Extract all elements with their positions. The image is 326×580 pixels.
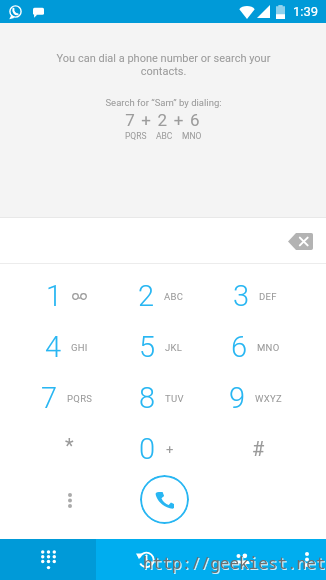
staticText: JKL	[165, 342, 183, 353]
button[interactable]: More options	[293, 539, 321, 580]
button[interactable]: 9	[208, 372, 302, 423]
button[interactable]: 7	[19, 372, 114, 423]
button[interactable]: 1	[19, 270, 114, 321]
staticText: GHI	[71, 342, 88, 353]
button[interactable]: #	[208, 423, 302, 474]
staticText: #	[252, 437, 265, 460]
staticText: *	[65, 434, 74, 457]
button[interactable]: 8	[114, 372, 208, 423]
staticText: +	[166, 442, 174, 457]
staticText: http://geekiest.net	[143, 552, 326, 574]
staticText: 1	[46, 279, 63, 313]
staticText: Search for “Sam” by dialing:	[105, 97, 222, 108]
button[interactable]: Call	[140, 475, 189, 524]
button[interactable]: 2	[114, 270, 208, 321]
staticText: 6	[231, 330, 248, 364]
button[interactable]: 5	[114, 321, 208, 372]
staticText: 3	[233, 279, 250, 313]
staticText: TUV	[165, 393, 184, 404]
staticText: DEF	[259, 291, 277, 302]
staticText: 1:39	[293, 4, 319, 19]
staticText: 7 + 2 + 6	[125, 110, 201, 130]
staticText: PQRS	[67, 393, 93, 404]
staticText: 9	[229, 381, 246, 415]
button[interactable]: Dialpad	[0, 539, 96, 580]
staticText: ABC	[156, 131, 173, 141]
staticText: ABC	[164, 291, 184, 302]
button[interactable]: 6	[208, 321, 302, 372]
staticText: PQRS	[125, 131, 147, 141]
button[interactable]: More options	[50, 480, 90, 520]
staticText: http://geekiest.net	[144, 553, 326, 575]
staticText: 7	[41, 381, 58, 415]
staticText: 2	[138, 279, 155, 313]
staticText: MNO	[257, 342, 280, 353]
staticText: You can dial a phone number or search yo…	[54, 52, 273, 78]
staticText: 8	[139, 381, 156, 415]
button[interactable]: Recents	[96, 539, 194, 580]
button[interactable]: Contacts	[194, 539, 289, 580]
staticText: 4	[45, 330, 62, 364]
button[interactable]: 4	[19, 321, 114, 372]
button[interactable]: Backspace	[283, 224, 317, 258]
staticText: 5	[139, 330, 156, 364]
staticText: MNO	[182, 131, 202, 141]
button[interactable]: 0	[114, 423, 208, 474]
staticText: WXYZ	[255, 393, 282, 404]
button[interactable]: *	[19, 423, 114, 474]
button[interactable]: 3	[208, 270, 302, 321]
staticText: 0	[139, 432, 156, 466]
